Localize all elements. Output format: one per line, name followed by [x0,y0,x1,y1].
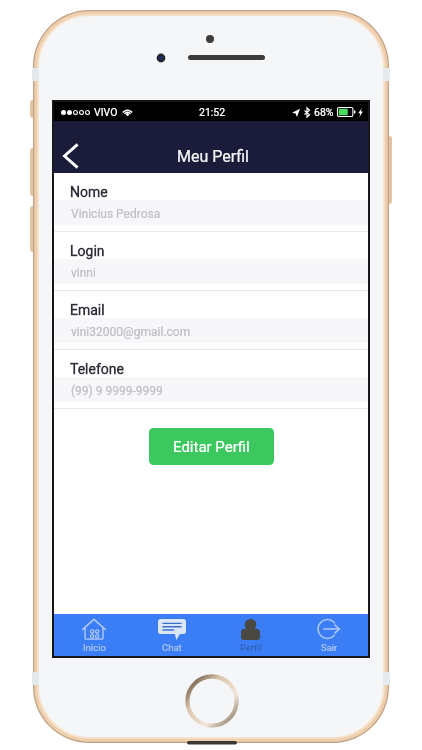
button[interactable]: Back [54,136,86,176]
staticText: vini32000@gmail.com [71,325,191,339]
staticText: Meu Perfil [177,147,249,166]
staticText: Nome [70,184,108,200]
button[interactable]: Perfil [210,614,289,656]
staticText: Chat [162,642,182,653]
button[interactable]: Nome [54,173,368,232]
staticText: 68% [314,106,334,118]
staticText: Perfil [240,642,262,653]
button[interactable]: Editar Perfil [149,428,274,465]
button[interactable]: Login [54,232,368,291]
staticText: VIVO [94,106,118,118]
staticText: Login [70,243,105,259]
staticText: Início [83,642,106,653]
staticText: vinni [71,266,96,280]
button[interactable]: Início [54,614,132,656]
staticText: Editar Perfil [173,438,250,456]
button[interactable]: Email [54,291,368,350]
button[interactable]: Telefone [54,350,368,409]
staticText: 21:52 [199,106,226,118]
staticText: Vinicius Pedrosa [71,207,161,221]
staticText: Sair [321,642,338,653]
staticText: (99) 9 9999-9999 [71,384,163,398]
staticText: Email [70,302,105,318]
button[interactable]: Chat [132,614,210,656]
button[interactable]: Sair [289,614,368,656]
staticText: Telefone [70,361,124,377]
